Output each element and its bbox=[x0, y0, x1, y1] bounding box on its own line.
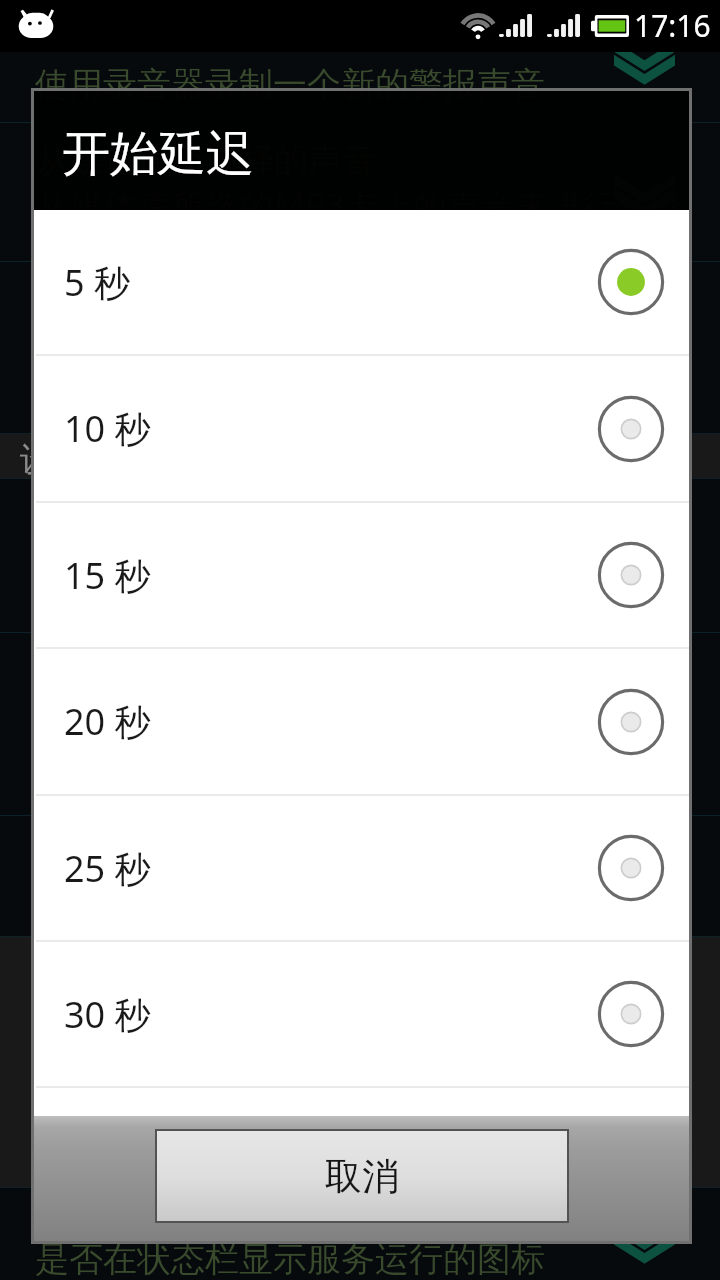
other: Notification bbox=[18, 8, 54, 38]
staticText: 从媒体库所选择的声音 bbox=[36, 139, 376, 182]
staticText: 30 秒 bbox=[64, 990, 151, 1039]
button[interactable]: 30 秒 bbox=[34, 942, 689, 1086]
button[interactable]: 15 秒 bbox=[34, 503, 689, 647]
staticText: 5 秒 bbox=[64, 258, 130, 307]
staticText: 25 秒 bbox=[64, 844, 151, 893]
staticText: 是否在状态栏显示服务运行的图标 bbox=[35, 1238, 545, 1280]
staticText: 17:16 bbox=[634, 5, 711, 46]
button[interactable]: 10 秒 bbox=[34, 356, 689, 501]
button[interactable]: 5 秒 bbox=[34, 210, 689, 354]
staticText: 取消 bbox=[325, 1153, 399, 1200]
staticText: 开始延迟 bbox=[62, 124, 254, 184]
staticText: 15 秒 bbox=[64, 551, 151, 600]
button[interactable]: 20 秒 bbox=[34, 649, 689, 794]
staticText: 使用录音器录制一个新的警报声音 bbox=[35, 63, 545, 106]
staticText: 设置 bbox=[20, 438, 88, 481]
staticText: 10 秒 bbox=[64, 404, 151, 453]
button[interactable]: 取消 bbox=[157, 1131, 567, 1221]
button[interactable]: 25 秒 bbox=[34, 796, 689, 940]
staticText: 从媒体库所选的MP3卡上的声音来进行选择 bbox=[36, 182, 685, 228]
staticText: 20 秒 bbox=[64, 697, 151, 746]
